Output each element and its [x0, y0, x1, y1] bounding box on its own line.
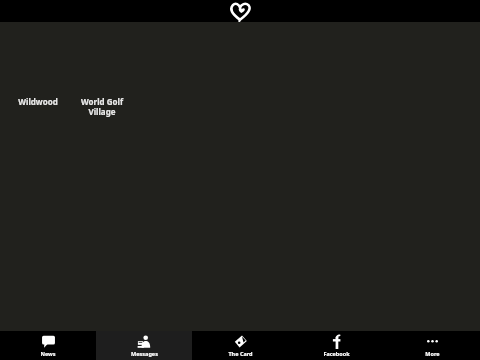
staticText: Messages — [131, 350, 158, 357]
staticText: More — [425, 350, 440, 357]
button[interactable]: Facebook — [288, 331, 384, 360]
staticText: News — [40, 350, 56, 357]
staticText: Wildwood — [18, 96, 58, 107]
button[interactable]: More — [384, 331, 480, 360]
button[interactable]: Home logo — [227, 0, 253, 22]
button[interactable]: The Card — [192, 331, 288, 360]
staticText: The Card — [228, 350, 253, 357]
staticText: Facebook — [323, 350, 350, 357]
button[interactable]: Messages — [96, 331, 192, 360]
button[interactable]: Wildwood — [8, 96, 68, 107]
staticText: World Golf Village — [72, 96, 132, 117]
button[interactable]: World Golf Village — [72, 96, 132, 117]
button[interactable]: News — [0, 331, 96, 360]
